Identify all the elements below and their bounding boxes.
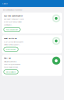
staticText: Call us (4, 57, 11, 59)
staticText: your turn, so you don't (4, 63, 21, 65)
staticText: We'll call you when it's (4, 60, 17, 63)
staticText: ‹ (2, 1, 3, 6)
staticText: Post a question (6, 28, 18, 31)
staticText: Start a chat with an agent (4, 41, 24, 43)
staticText: Ask the Community (4, 14, 23, 17)
button[interactable]: ‹ (1, 1, 8, 6)
button[interactable]: Get a call back (4, 70, 18, 74)
staticText: Community. (4, 24, 12, 26)
staticText: Get a call back (6, 71, 16, 73)
staticText: Chat with us (4, 37, 17, 39)
staticText: Get help from experts and (4, 18, 24, 20)
staticText: other users in our online (4, 21, 22, 23)
staticText: online for live support. (4, 43, 20, 46)
staticText: Start a chat (6, 48, 16, 50)
staticText: have to wait on hold. (4, 66, 18, 68)
staticText: Not seeing what you need? (3, 9, 23, 11)
button[interactable]: Start a chat (4, 47, 18, 51)
staticText: Back (4, 2, 8, 5)
button[interactable]: Post a question (4, 27, 20, 32)
